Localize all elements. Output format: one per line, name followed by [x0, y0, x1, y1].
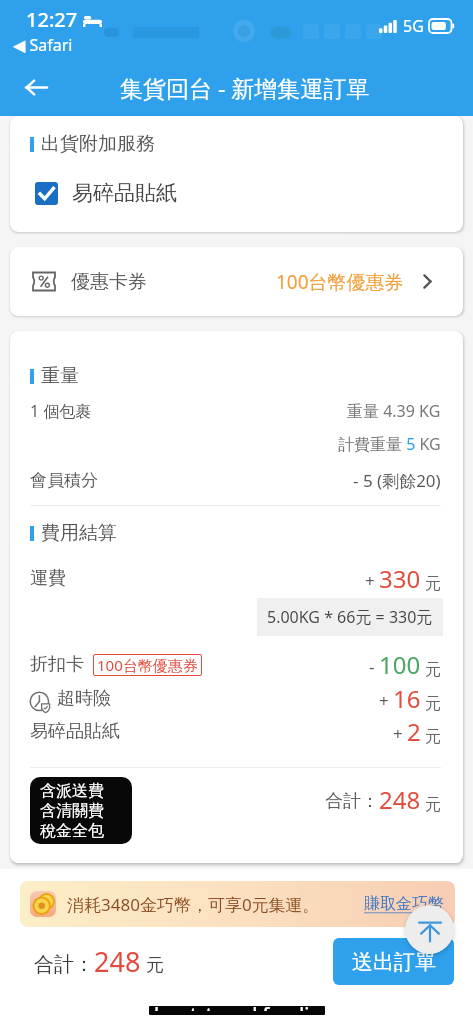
staticText: kwyt_travel.foodie	[154, 1006, 321, 1011]
staticText: +	[365, 569, 375, 592]
button[interactable]: 優惠卡券	[10, 247, 463, 316]
staticText: 合計：	[34, 952, 94, 977]
staticText: 元	[425, 694, 441, 714]
staticText: 集貨回台 - 新增集運訂單	[120, 72, 370, 103]
staticText: 5.00KG * 66元 = 330元	[267, 606, 433, 628]
staticText: 賺取金巧幣	[364, 894, 444, 914]
staticText: -	[369, 655, 375, 678]
staticText: 重量 4.39 KG	[347, 400, 441, 422]
staticText: 消耗3480金巧幣，可享0元集運。	[67, 893, 320, 916]
staticText: 計費重量 5 KG	[338, 433, 441, 455]
staticText: 超時險	[57, 687, 111, 710]
staticText: 元	[146, 954, 164, 977]
staticText: ◀ Safari	[13, 34, 73, 56]
staticText: 重量	[41, 364, 79, 388]
staticText: 16	[393, 682, 421, 715]
staticText: 330	[379, 562, 421, 595]
staticText: 易碎品貼紙	[72, 180, 177, 206]
button[interactable]: Back	[16, 67, 56, 107]
staticText: 元	[425, 660, 441, 680]
staticText: 100台幣優惠券	[97, 655, 198, 675]
staticText: 248	[94, 943, 141, 980]
staticText: 送出訂單	[352, 949, 436, 975]
staticText: 優惠卡券	[71, 270, 147, 294]
staticText: 元	[425, 795, 441, 815]
staticText: - 5 (剩餘20)	[353, 469, 441, 492]
staticText: 費用結算	[41, 521, 117, 545]
staticText: +	[379, 689, 389, 712]
staticText: 合計：	[325, 790, 379, 813]
button[interactable]: 送出訂單	[333, 938, 454, 985]
button[interactable]: 易碎品貼紙	[35, 180, 177, 206]
staticText: 稅金全包	[40, 821, 104, 841]
staticText: 會員積分	[30, 470, 98, 491]
staticText: 折扣卡	[30, 653, 84, 676]
button[interactable]: 消耗3480金巧幣，可享0元集運。	[20, 881, 455, 927]
staticText: 運費	[30, 567, 66, 590]
staticText: 100	[379, 648, 421, 681]
staticText: 含派送費	[40, 781, 104, 801]
staticText: +	[393, 722, 403, 745]
button[interactable]: Scroll to top	[405, 905, 454, 954]
staticText: 元	[425, 574, 441, 594]
staticText: 5G	[403, 15, 424, 37]
staticText: 12:27	[26, 6, 78, 33]
staticText: 易碎品貼紙	[30, 720, 120, 743]
staticText: 元	[425, 727, 441, 747]
staticText: 含清關費	[40, 801, 104, 821]
staticText: 1 個包裹	[30, 400, 92, 422]
staticText: 100台幣優惠券	[276, 269, 404, 295]
staticText: 出貨附加服務	[41, 132, 155, 156]
staticText: 2	[407, 715, 421, 748]
staticText: 248	[379, 783, 421, 816]
